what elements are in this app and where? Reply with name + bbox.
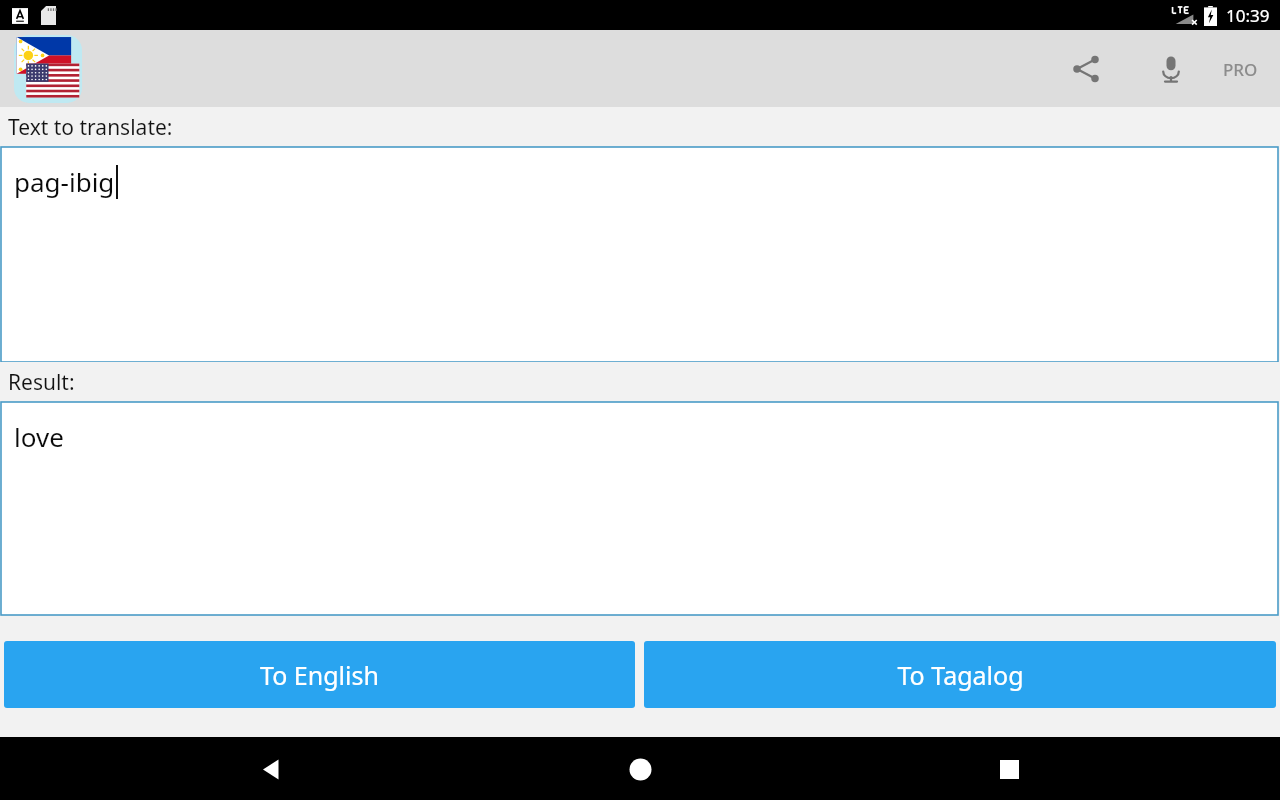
button[interactable]: Voice input (1143, 41, 1199, 97)
button[interactable]: Back (240, 738, 302, 800)
staticText: To Tagalog (897, 658, 1024, 692)
button[interactable]: pag-ibig (1, 147, 1278, 362)
staticText: PRO (1223, 58, 1258, 81)
staticText: 10:39 (1226, 4, 1270, 27)
button[interactable]: App icon (14, 35, 82, 103)
staticText: To English (260, 658, 379, 692)
staticText: Text to translate: (8, 113, 173, 142)
button[interactable]: To English (4, 641, 635, 708)
button[interactable]: Home (609, 738, 671, 800)
button[interactable]: love (1, 402, 1278, 615)
button[interactable]: PRO (1215, 41, 1266, 97)
staticText: pag-ibig (14, 164, 115, 199)
button[interactable]: Recent apps (978, 738, 1040, 800)
button[interactable]: To Tagalog (644, 641, 1276, 708)
button[interactable]: Share (1058, 41, 1114, 97)
staticText: love (14, 419, 64, 454)
staticText: Result: (8, 368, 75, 397)
